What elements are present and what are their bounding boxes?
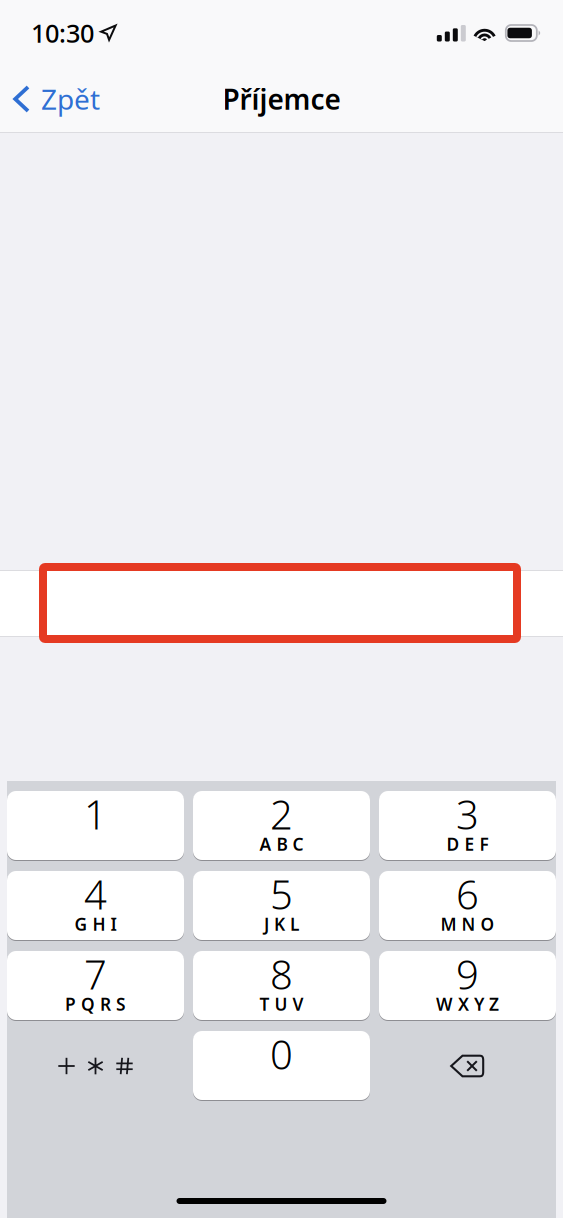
staticText: J K L [264, 912, 299, 935]
button[interactable]: 3 [379, 791, 556, 861]
button[interactable]: 9 [379, 951, 556, 1021]
button[interactable]: 4 [7, 871, 184, 941]
staticText: 2 [270, 787, 293, 840]
staticText: P Q R S [65, 992, 126, 1015]
staticText: Zpět [41, 80, 100, 118]
staticText: 5 [270, 867, 293, 920]
button[interactable]: 1 [7, 791, 184, 861]
staticText: 10:30 [31, 16, 94, 50]
button[interactable]: 0 [193, 1031, 370, 1101]
button[interactable]: 2 [193, 791, 370, 861]
staticText: 3 [456, 787, 479, 840]
button[interactable] [0, 571, 563, 636]
button[interactable]: Symbols [7, 1031, 184, 1101]
staticText: 1 [84, 787, 107, 840]
staticText: G H I [74, 912, 116, 935]
staticText: M N O [440, 912, 494, 935]
button[interactable]: 7 [7, 951, 184, 1021]
staticText: A B C [259, 832, 303, 855]
staticText: 9 [456, 947, 479, 1000]
button[interactable]: Zpět [0, 72, 110, 126]
staticText: 4 [84, 867, 107, 920]
staticText: 0 [270, 1027, 293, 1080]
staticText: T U V [259, 992, 303, 1015]
button[interactable]: Delete [379, 1031, 556, 1101]
staticText: W X Y Z [436, 992, 499, 1015]
button[interactable]: 8 [193, 951, 370, 1021]
button[interactable]: 6 [379, 871, 556, 941]
staticText: 7 [84, 947, 107, 1000]
staticText: Příjemce [222, 80, 340, 118]
staticText: D E F [446, 832, 488, 855]
staticText: 8 [270, 947, 293, 1000]
button[interactable]: 5 [193, 871, 370, 941]
staticText: 6 [456, 867, 479, 920]
